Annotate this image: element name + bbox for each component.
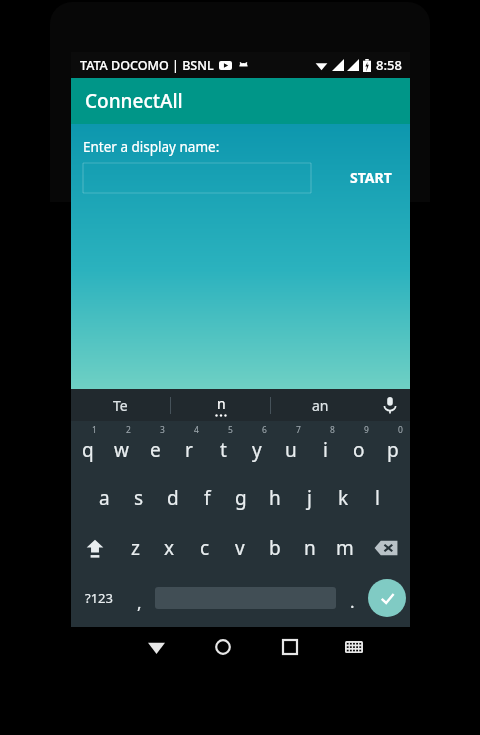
button[interactable]: v	[222, 523, 257, 573]
button[interactable]: c	[187, 523, 222, 573]
staticText: l	[375, 485, 380, 511]
button[interactable]: Switch keyboard	[337, 630, 371, 664]
button[interactable]: l	[360, 473, 394, 523]
staticText: e	[150, 437, 161, 463]
button[interactable]: a	[87, 473, 122, 523]
button[interactable]	[83, 163, 311, 193]
button[interactable]: x	[152, 523, 187, 573]
button[interactable]: an	[271, 389, 370, 421]
staticText: ConnectAll	[85, 88, 183, 114]
staticText: 4	[194, 424, 199, 436]
button[interactable]: Recent apps	[270, 627, 310, 667]
button[interactable]: 4	[172, 421, 206, 473]
staticText: b	[269, 535, 281, 561]
staticText: 6	[262, 424, 267, 436]
button[interactable]: n	[171, 389, 270, 421]
staticText: 8:58	[376, 56, 402, 74]
button[interactable]: 3	[138, 421, 172, 473]
staticText: o	[353, 437, 365, 463]
button[interactable]: Voice input	[370, 389, 410, 421]
staticText: 7	[296, 424, 301, 436]
staticText: g	[235, 485, 247, 511]
button[interactable]: s	[122, 473, 156, 523]
button[interactable]: 0	[376, 421, 410, 473]
button[interactable]: 1	[71, 421, 104, 473]
button[interactable]: 8	[308, 421, 342, 473]
staticText: 0	[398, 424, 403, 436]
staticText: z	[131, 535, 140, 561]
button[interactable]: 6	[240, 421, 274, 473]
button[interactable]: d	[156, 473, 190, 523]
staticText: ?123	[85, 589, 113, 607]
button[interactable]: k	[326, 473, 360, 523]
staticText: Enter a display name:	[83, 138, 220, 156]
button[interactable]: z	[118, 523, 152, 573]
button[interactable]: Te	[71, 389, 170, 421]
staticText: c	[200, 535, 210, 561]
staticText: p	[387, 437, 399, 463]
staticText: START	[350, 168, 392, 187]
staticText: q	[82, 437, 94, 463]
button[interactable]: START	[342, 162, 400, 193]
staticText: h	[269, 485, 281, 511]
staticText: m	[336, 535, 354, 561]
staticText: 8	[330, 424, 335, 436]
staticText: ,	[137, 591, 142, 614]
staticText: n	[217, 394, 226, 413]
button[interactable]: j	[292, 473, 326, 523]
button[interactable]: ,	[123, 573, 155, 623]
button[interactable]: g	[224, 473, 258, 523]
staticText: v	[235, 535, 245, 561]
staticText: 2	[126, 424, 131, 436]
staticText: TATA DOCOMO | BSNL	[80, 57, 214, 74]
staticText: i	[323, 437, 328, 463]
staticText: 3	[160, 424, 165, 436]
staticText: d	[167, 485, 179, 511]
staticText: .	[350, 590, 355, 613]
staticText: j	[307, 485, 312, 511]
staticText: n	[304, 535, 316, 561]
staticText: y	[252, 437, 262, 463]
button[interactable]: ?123	[75, 573, 123, 623]
button[interactable]: n	[292, 523, 327, 573]
staticText: u	[285, 437, 297, 463]
button[interactable]: 5	[206, 421, 240, 473]
staticText: 5	[228, 424, 233, 436]
button[interactable]: .	[336, 573, 368, 623]
button[interactable]: Enter	[368, 579, 406, 617]
staticText: 9	[364, 424, 369, 436]
staticText: k	[338, 485, 349, 511]
button[interactable]: b	[257, 523, 292, 573]
button[interactable]: 2	[104, 421, 138, 473]
staticText: 1	[92, 424, 97, 436]
staticText: w	[114, 437, 129, 463]
staticText: Te	[113, 396, 128, 415]
button[interactable]: Backspace	[362, 523, 410, 573]
staticText: a	[99, 485, 110, 511]
button[interactable]: f	[190, 473, 224, 523]
button[interactable]: h	[258, 473, 292, 523]
button[interactable]: 9	[342, 421, 376, 473]
staticText: s	[134, 485, 144, 511]
button[interactable]: Shift	[71, 523, 118, 573]
staticText: an	[312, 396, 329, 415]
staticText: f	[204, 485, 211, 511]
staticText: r	[185, 437, 193, 463]
button[interactable]: Back	[136, 627, 176, 667]
button[interactable]: m	[327, 523, 362, 573]
staticText: t	[220, 437, 227, 463]
button[interactable]: Home	[203, 627, 243, 667]
staticText: x	[164, 535, 175, 561]
button[interactable]: 7	[274, 421, 308, 473]
